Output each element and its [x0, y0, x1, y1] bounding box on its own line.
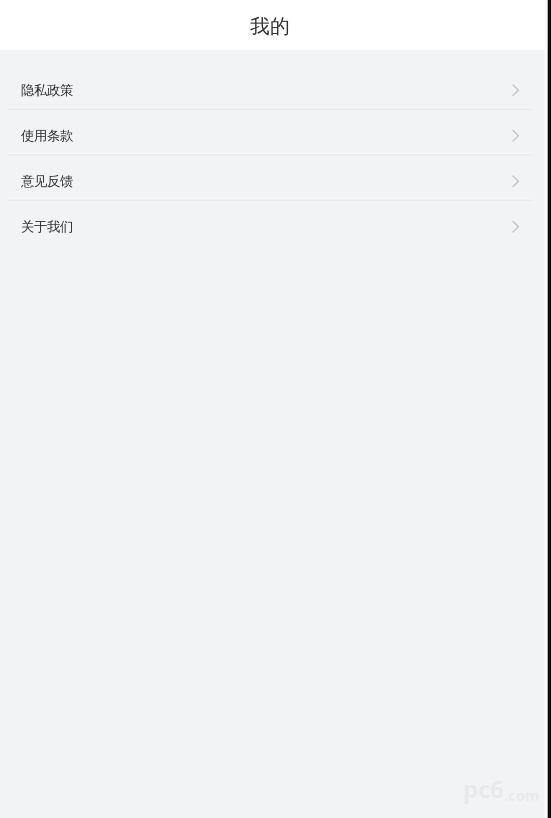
- button[interactable]: 使用条款: [0, 110, 551, 155]
- button[interactable]: 意见反馈: [0, 155, 551, 201]
- button[interactable]: 关于我们: [0, 201, 551, 246]
- staticText: .com: [504, 785, 539, 805]
- staticText: pc6: [463, 772, 504, 805]
- staticText: 使用条款: [21, 127, 73, 144]
- staticText: 隐私政策: [21, 82, 73, 99]
- button[interactable]: 隐私政策: [0, 64, 551, 110]
- staticText: 意见反馈: [21, 173, 73, 190]
- staticText: 我的: [250, 14, 290, 39]
- staticText: 关于我们: [21, 218, 73, 235]
